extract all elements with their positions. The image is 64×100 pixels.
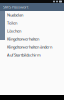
button[interactable]: Klingeltonverhalten ändern [0,43,64,51]
button[interactable]: Nuabelan [0,11,64,19]
staticText: Klingeltonverhalten ändern [7,44,52,50]
staticText: Nuabelan [7,12,23,18]
button[interactable]: Teilen [0,19,64,27]
button[interactable]: Auf Startbildschirm [0,51,64,59]
staticText: Klingeltonverhalten [7,36,39,42]
staticText: SMS Passwort [3,4,28,10]
button[interactable]: Löschen [0,27,64,35]
staticText: Auf Startbildschirm [7,52,41,58]
staticText: Löschen [7,28,21,34]
staticText: Teilen [7,20,17,26]
button[interactable]: Klingeltonverhalten [0,35,64,43]
